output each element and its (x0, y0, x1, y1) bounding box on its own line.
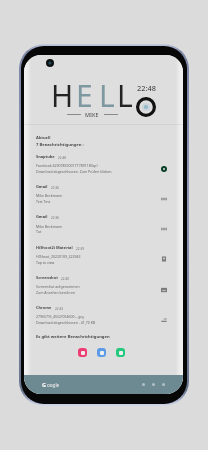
staticText: Es gibt weitere Benachrichtigungen (36, 334, 110, 340)
staticText: Gmail (36, 214, 48, 219)
button[interactable] (33, 302, 180, 328)
staticText: 22:48 (58, 156, 67, 160)
button[interactable]: Home (152, 383, 155, 386)
staticText: L (99, 75, 115, 116)
staticText: Chrome (36, 305, 52, 310)
staticText: 22:36 (51, 186, 60, 190)
staticText: 22:48 (137, 83, 156, 93)
staticText: Gmail (36, 184, 48, 189)
staticText: 7 Benachrichtigungen : (36, 142, 84, 148)
button[interactable] (33, 211, 180, 237)
staticText: Download abgeschlossen - 41,70 KB (36, 320, 96, 325)
staticText: Facebook 42907855001777891180cp) (36, 163, 98, 168)
staticText: oogle (47, 382, 60, 388)
button[interactable] (33, 272, 180, 298)
button[interactable]: Instagram (78, 348, 87, 357)
staticText: Snaptube (36, 154, 55, 159)
button[interactable]: Google Search (42, 381, 60, 388)
staticText: Mike Beckmann (36, 224, 63, 229)
button[interactable]: Recents (162, 383, 165, 386)
staticText: Tap to view (36, 260, 55, 265)
staticText: G (42, 381, 46, 388)
staticText: Screenshot (36, 275, 58, 280)
staticText: Mike Beckmann (36, 193, 63, 198)
staticText: 22:36 (51, 216, 60, 220)
staticText: 22:40 (61, 277, 70, 281)
staticText: Zum Ansehen berühren (36, 290, 76, 295)
staticText: HiShoot2i Material (36, 245, 73, 250)
staticText: MIKE (85, 111, 99, 118)
button[interactable]: Messenger (97, 348, 106, 357)
button[interactable] (33, 181, 180, 207)
button[interactable] (33, 242, 180, 268)
staticText: Aktuell (36, 135, 51, 140)
button[interactable] (33, 151, 180, 177)
button[interactable]: Back (142, 383, 145, 386)
staticText: H (51, 75, 74, 116)
staticText: HIShoot_20220109_223943 (36, 254, 81, 259)
staticText: Test Test (36, 199, 51, 204)
staticText: 279657?6_4552?054600....jpg (36, 314, 84, 319)
staticText: Screenshot aufgenommen (36, 284, 80, 289)
staticText: Download abgeschlossen. Zum Prüfen klick… (36, 169, 113, 174)
button[interactable]: WhatsApp (116, 348, 125, 357)
staticText: L (117, 75, 133, 116)
staticText: E (76, 75, 93, 116)
staticText: Tut (36, 229, 42, 234)
staticText: 22:43 (55, 307, 64, 311)
staticText: 22:39 (76, 247, 85, 251)
